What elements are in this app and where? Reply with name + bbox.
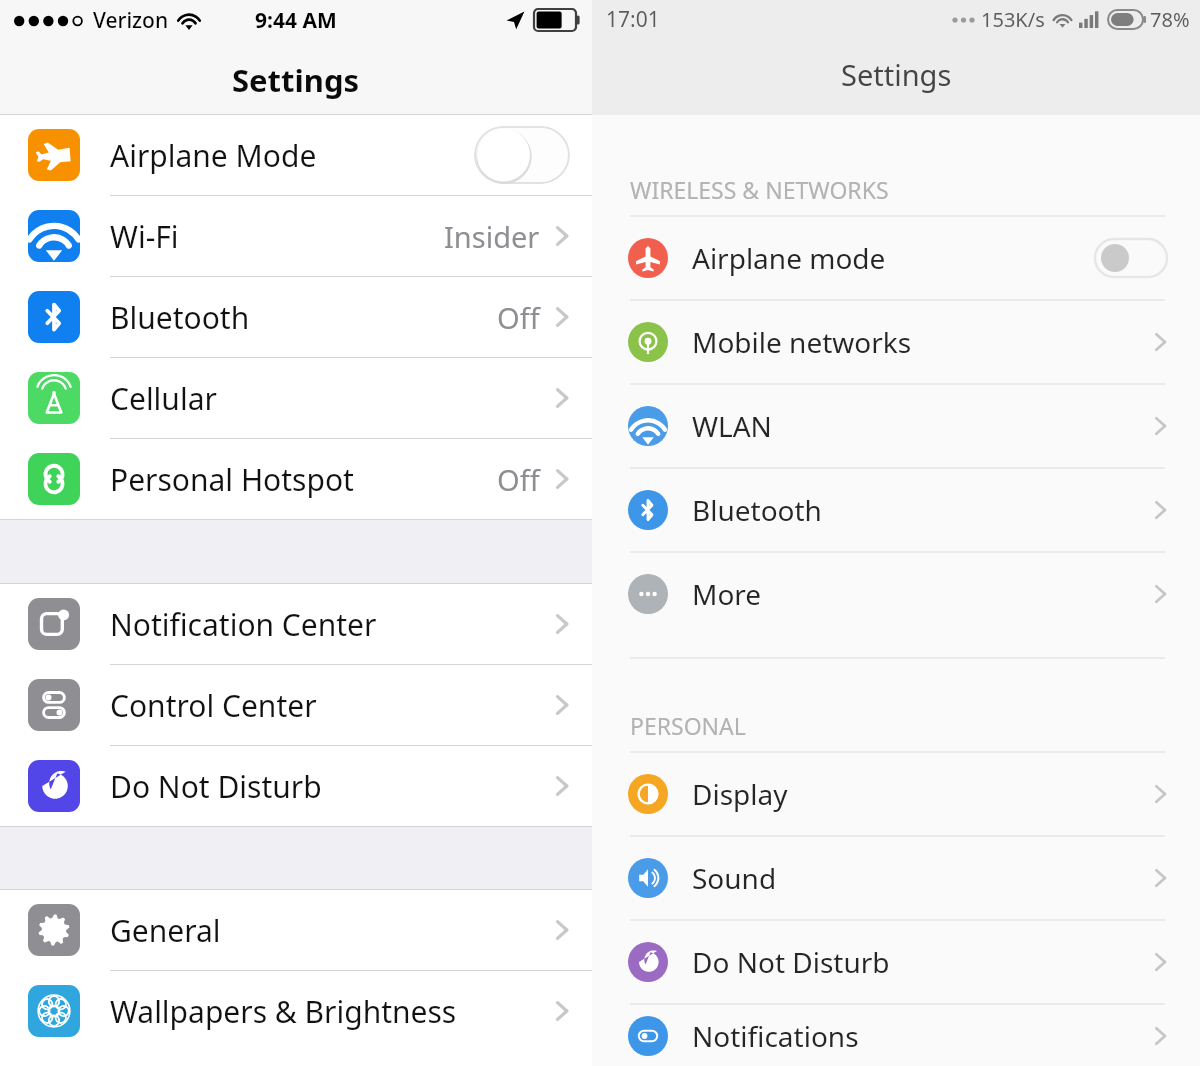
- staticText: Wallpapers & Brightness: [110, 991, 457, 1032]
- staticText: Control Center: [110, 685, 317, 726]
- button[interactable]: Personal Hotspot: [0, 439, 592, 519]
- button[interactable]: Airplane Mode toggle: [474, 126, 570, 184]
- staticText: Wi-Fi: [110, 216, 179, 257]
- staticText: PERSONAL: [630, 710, 746, 741]
- staticText: General: [110, 910, 221, 951]
- staticText: Cellular: [110, 378, 217, 419]
- staticText: Display: [692, 775, 788, 813]
- button[interactable]: Notification Center: [0, 584, 592, 664]
- staticText: Mobile networks: [692, 323, 912, 361]
- staticText: Settings: [841, 55, 952, 94]
- staticText: 17:01: [606, 5, 660, 34]
- staticText: Off: [497, 298, 540, 337]
- button[interactable]: Control Center: [0, 665, 592, 745]
- button[interactable]: Wi-Fi: [0, 196, 592, 276]
- staticText: Bluetooth: [110, 297, 250, 338]
- button[interactable]: Airplane mode toggle: [1094, 238, 1168, 278]
- staticText: Airplane Mode: [110, 135, 317, 176]
- button[interactable]: Airplane mode: [592, 217, 1200, 299]
- button[interactable]: WLAN: [592, 385, 1200, 467]
- staticText: Personal Hotspot: [110, 459, 354, 500]
- staticText: 153K/s: [981, 6, 1045, 33]
- staticText: Settings: [232, 59, 360, 101]
- staticText: 78%: [1150, 6, 1190, 33]
- staticText: WIRELESS & NETWORKS: [630, 174, 889, 205]
- staticText: Do Not Disturb: [110, 766, 322, 807]
- button[interactable]: Notifications: [592, 1005, 1200, 1066]
- button[interactable]: General: [0, 890, 592, 970]
- button[interactable]: Cellular: [0, 358, 592, 438]
- staticText: Insider: [444, 217, 540, 256]
- staticText: More: [692, 575, 762, 613]
- staticText: Bluetooth: [692, 491, 822, 529]
- staticText: Notification Center: [110, 604, 377, 645]
- button[interactable]: More: [592, 553, 1200, 635]
- button[interactable]: Mobile networks: [592, 301, 1200, 383]
- staticText: Do Not Disturb: [692, 943, 890, 981]
- staticText: WLAN: [692, 407, 772, 445]
- staticText: Off: [497, 460, 540, 499]
- button[interactable]: Airplane Mode: [0, 115, 592, 195]
- staticText: Airplane mode: [692, 239, 886, 277]
- button[interactable]: Bluetooth: [592, 469, 1200, 551]
- button[interactable]: Do Not Disturb: [0, 746, 592, 826]
- staticText: Notifications: [692, 1017, 859, 1055]
- button[interactable]: Sound: [592, 837, 1200, 919]
- staticText: 9:44 AM: [255, 6, 337, 35]
- button[interactable]: Bluetooth: [0, 277, 592, 357]
- staticText: Verizon: [93, 6, 169, 35]
- button[interactable]: Do Not Disturb: [592, 921, 1200, 1003]
- button[interactable]: Wallpapers & Brightness: [0, 971, 592, 1051]
- button[interactable]: Display: [592, 753, 1200, 835]
- staticText: Sound: [692, 859, 777, 897]
